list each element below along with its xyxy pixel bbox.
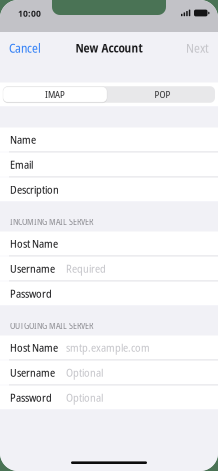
staticText: Required: [66, 261, 106, 276]
staticText: Optional: [66, 365, 103, 380]
staticText: IMAP: [45, 88, 65, 101]
button[interactable]: POP: [108, 86, 216, 103]
button[interactable]: Next: [178, 32, 218, 64]
staticText: Host Name: [10, 236, 58, 251]
staticText: Next: [186, 40, 209, 56]
staticText: Host Name: [10, 340, 58, 355]
staticText: Optional: [66, 390, 103, 405]
staticText: Password: [10, 390, 52, 405]
staticText: INCOMING MAIL SERVER: [10, 216, 93, 227]
staticText: Description: [10, 182, 59, 197]
staticText: Name: [10, 132, 36, 147]
button[interactable]: Host Name: [0, 335, 218, 359]
button[interactable]: Description: [0, 177, 218, 201]
button[interactable]: IMAP: [3, 86, 107, 103]
staticText: POP: [154, 88, 170, 101]
staticText: Username: [10, 261, 55, 276]
button[interactable]: Password: [0, 385, 218, 409]
staticText: Email: [10, 157, 33, 172]
staticText: Username: [10, 365, 55, 380]
button[interactable]: Username: [0, 360, 218, 384]
button[interactable]: Host Name: [0, 231, 218, 255]
button[interactable]: Cancel: [0, 32, 49, 64]
button[interactable]: Email: [0, 152, 218, 176]
button[interactable]: Name: [0, 127, 218, 151]
button[interactable]: Password: [0, 281, 218, 305]
staticText: Cancel: [9, 40, 41, 56]
staticText: 10:00: [18, 6, 41, 19]
staticText: smtp.example.com: [66, 340, 150, 355]
button[interactable]: Username: [0, 256, 218, 280]
staticText: OUTGOING MAIL SERVER: [10, 320, 93, 331]
staticText: Password: [10, 286, 52, 301]
staticText: New Account: [75, 40, 142, 56]
